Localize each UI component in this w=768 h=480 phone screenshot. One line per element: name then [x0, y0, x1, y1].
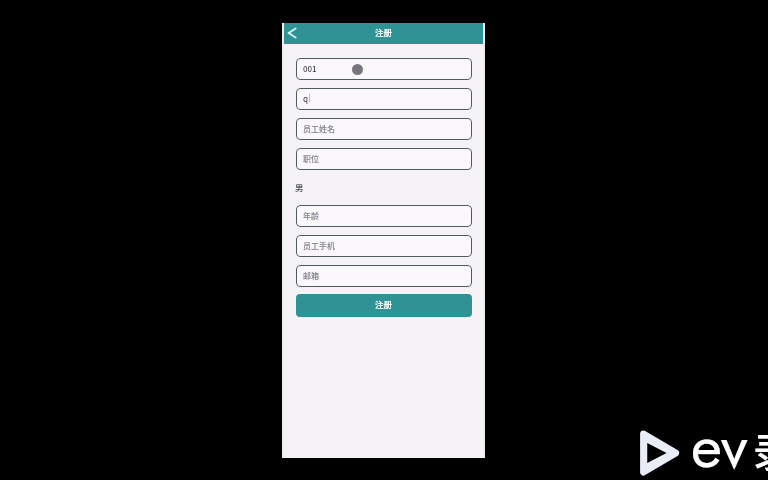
button[interactable]: 年龄 [296, 205, 472, 227]
staticText: ev [691, 403, 748, 480]
button[interactable]: 注册 [296, 294, 472, 317]
staticText: 员工手机 [303, 240, 335, 252]
staticText: 邮箱 [303, 270, 319, 282]
button[interactable]: 职位 [296, 148, 472, 170]
staticText: 职位 [303, 153, 319, 165]
button[interactable]: 员工姓名 [296, 118, 472, 140]
button[interactable]: Back [284, 23, 312, 43]
staticText: 注册 [375, 298, 393, 310]
staticText: 男 [295, 181, 304, 193]
button[interactable]: 男 [296, 170, 472, 205]
button[interactable]: 邮箱 [296, 265, 472, 287]
button[interactable]: q [296, 88, 472, 110]
staticText: 员工姓名 [303, 123, 335, 135]
staticText: 001 [303, 63, 317, 75]
staticText: q [303, 93, 309, 105]
staticText: 录屏 [753, 421, 768, 479]
staticText: 注册 [375, 26, 393, 38]
button[interactable]: 员工手机 [296, 235, 472, 257]
staticText: 年龄 [303, 210, 319, 222]
button[interactable]: 001 [296, 58, 472, 80]
